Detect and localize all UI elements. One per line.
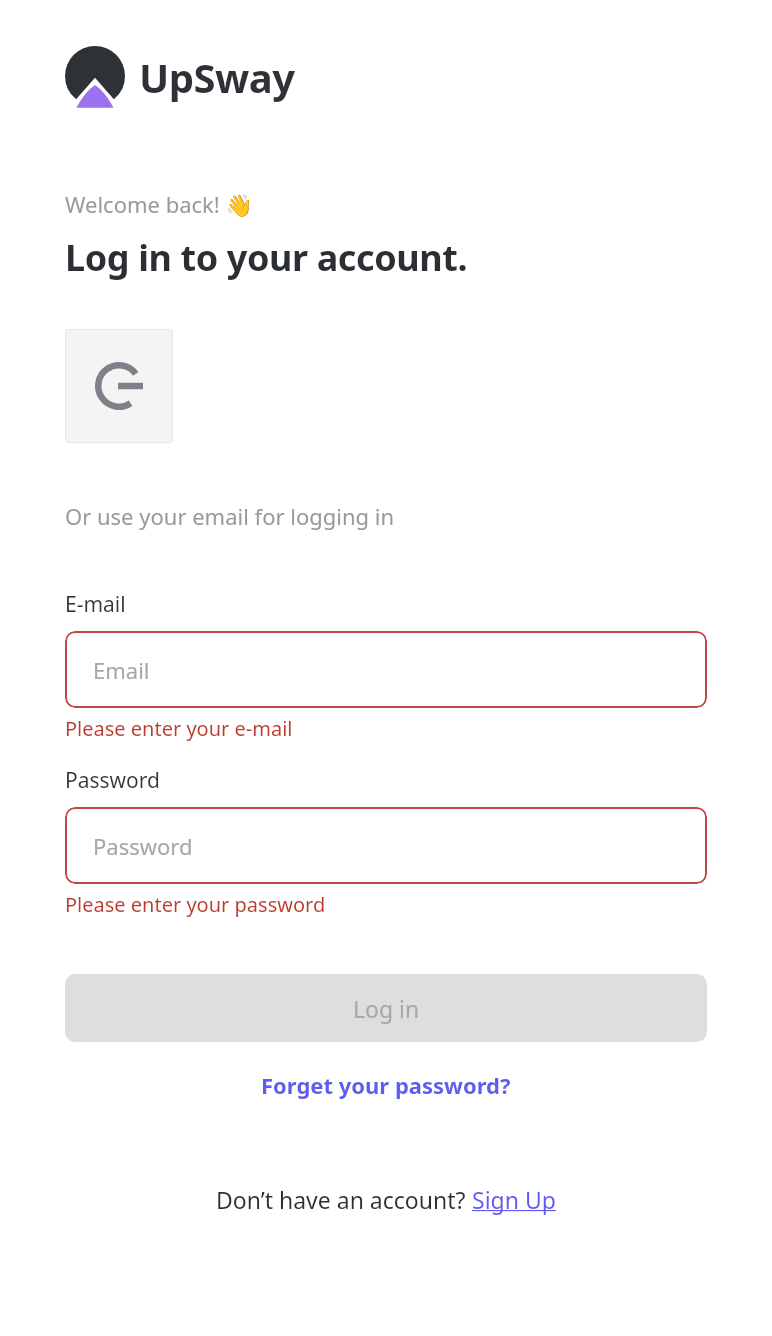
staticText: Email — [93, 655, 150, 685]
button[interactable]: Password — [65, 807, 707, 884]
staticText: E-mail — [65, 590, 126, 619]
staticText: UpSway — [139, 50, 295, 104]
staticText: Sign Up — [472, 1184, 556, 1215]
staticText: Forget your password? — [261, 1070, 511, 1100]
button[interactable]: Log in — [65, 974, 707, 1042]
staticText: Password — [93, 831, 193, 861]
button[interactable]: Sign Up — [472, 1184, 556, 1215]
staticText: Log in — [353, 993, 420, 1024]
button[interactable]: Email — [65, 631, 707, 708]
staticText: Password — [65, 766, 160, 795]
staticText: Or use your email for logging in — [65, 501, 395, 531]
staticText: Please enter your password — [65, 891, 326, 918]
staticText: Please enter your e-mail — [65, 715, 293, 742]
button[interactable]: Forget your password? — [253, 1064, 519, 1106]
staticText: Log in to your account. — [65, 233, 468, 282]
staticText: Don’t have an account? — [216, 1184, 472, 1215]
staticText: Welcome back! 👋 — [65, 189, 253, 219]
button[interactable]: Sign in with Google — [65, 329, 173, 443]
